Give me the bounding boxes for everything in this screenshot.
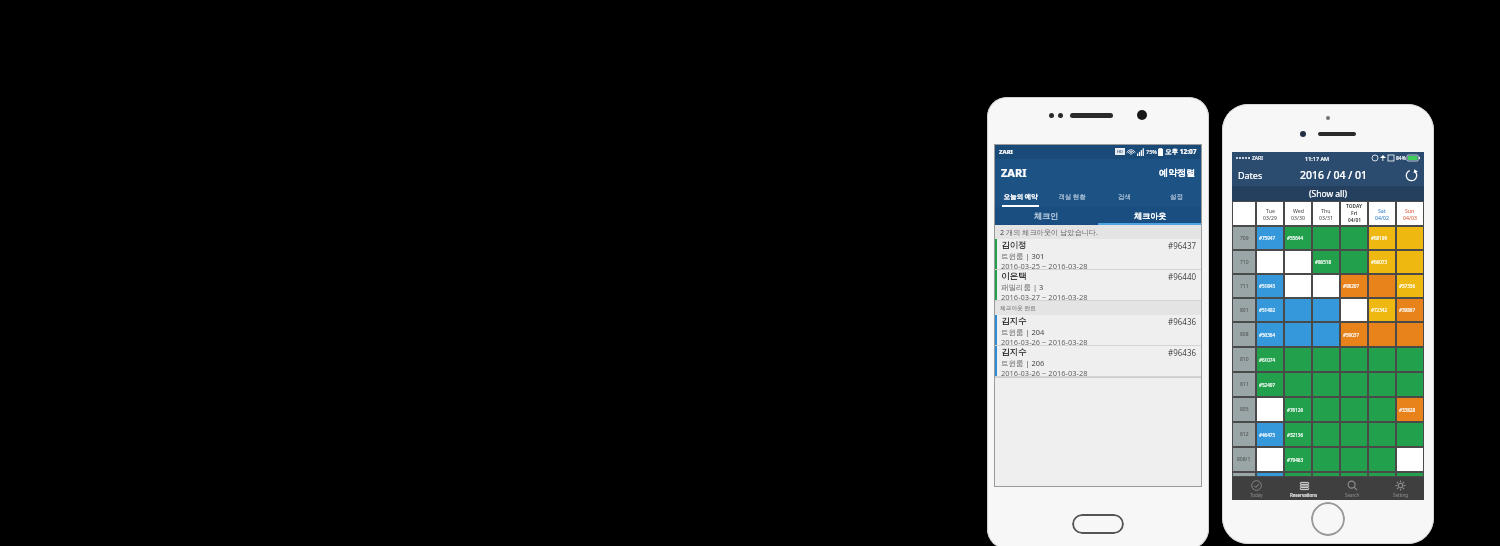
button[interactable]: 김지수 [994,346,1202,376]
button[interactable]: Setting [1376,477,1424,500]
button[interactable]: #33828 [1397,398,1423,421]
staticText: 811 [1240,381,1249,388]
staticText: 04/02 [1375,214,1389,221]
staticText: 808 [1240,331,1249,338]
button[interactable]: #98207 [1341,275,1367,297]
button[interactable]: 김지수 [994,315,1202,345]
staticText: HD [1117,149,1123,154]
button[interactable]: 체크아웃 [1098,207,1202,225]
staticText: 03/31 [1319,214,1333,221]
button[interactable]: #32136 [1285,423,1311,446]
staticText: 패밀리룸 | 3 [1001,282,1044,292]
staticText: #76126 [1287,407,1304,413]
staticText: 709 [1240,235,1249,242]
button[interactable]: 체크인 [994,207,1098,225]
button[interactable]: #86518 [1313,251,1339,273]
button[interactable]: #50364 [1257,323,1283,346]
button[interactable]: #52407 [1257,373,1283,396]
button[interactable]: 검색 [1098,186,1150,207]
button[interactable]: 이은택 [994,270,1202,300]
staticText: 예약정렬 [1159,167,1195,178]
staticText: 객실 현황 [1058,192,1086,201]
button[interactable]: 오늘의 예약 [994,186,1046,207]
button[interactable]: 객실 현황 [1046,186,1098,207]
staticText: 04/03 [1403,214,1417,221]
button[interactable]: #51845 [1257,275,1283,297]
button[interactable]: 김이정 [994,239,1202,269]
staticText: #96437 [1168,240,1197,251]
button[interactable]: (Show all) [1232,186,1424,201]
staticText: 805 [1240,406,1249,413]
button[interactable]: Refresh [1405,169,1418,182]
staticText: #66073 [1371,259,1388,265]
button[interactable]: #72342 [1369,299,1395,321]
staticText: 03/30 [1291,214,1305,221]
button[interactable]: #68109 [1369,227,1395,249]
button[interactable]: #57356 [1397,275,1423,297]
button[interactable]: #39867 [1397,299,1423,321]
staticText: #96436 [1168,316,1197,327]
button[interactable]: Today [1232,477,1280,500]
staticText: Thu [1321,207,1331,214]
button[interactable]: Dates [1238,169,1263,181]
staticText: 체크아웃 완료 [1000,304,1036,312]
button[interactable]: #46475 [1257,423,1283,446]
button[interactable]: #79463 [1285,448,1311,471]
button[interactable]: 예약정렬 [1159,167,1195,178]
button[interactable]: #75947 [1257,227,1283,249]
button[interactable]: Reservations [1280,477,1328,500]
button[interactable]: #66073 [1369,251,1395,273]
staticText: 84% [1396,155,1406,162]
button[interactable]: #51402 [1257,299,1283,321]
button[interactable]: #59037 [1341,323,1367,346]
button[interactable]: #55644 [1285,227,1311,249]
button[interactable]: #76126 [1285,398,1311,421]
button[interactable]: 설정 [1150,186,1202,207]
staticText: ZARI [1252,155,1263,162]
button[interactable]: #61074 [1257,348,1283,371]
button[interactable]: Search [1328,477,1376,500]
staticText: 오후 12:07 [1165,147,1197,156]
staticText: #79463 [1287,457,1304,463]
